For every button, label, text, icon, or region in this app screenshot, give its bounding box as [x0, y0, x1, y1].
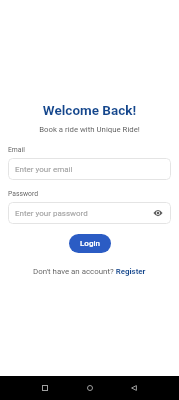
button[interactable]: Don't have an account? Register	[33, 267, 146, 276]
button[interactable]: Enter your password	[8, 202, 171, 224]
staticText: Enter your password	[15, 209, 88, 218]
button[interactable]: Show password	[152, 207, 164, 219]
staticText: Welcome Back!	[0, 102, 179, 118]
staticText: Password	[8, 190, 39, 198]
button[interactable]: Enter your email	[8, 158, 171, 180]
button[interactable]: Login	[69, 234, 111, 253]
staticText: Login	[80, 239, 100, 248]
button[interactable]: Recents	[35, 378, 55, 398]
staticText: Enter your email	[15, 165, 73, 174]
staticText: Email	[8, 146, 25, 154]
button[interactable]: Back	[124, 378, 144, 398]
button[interactable]: Home	[80, 378, 100, 398]
staticText: Book a ride with Unique Ride!	[0, 125, 179, 134]
